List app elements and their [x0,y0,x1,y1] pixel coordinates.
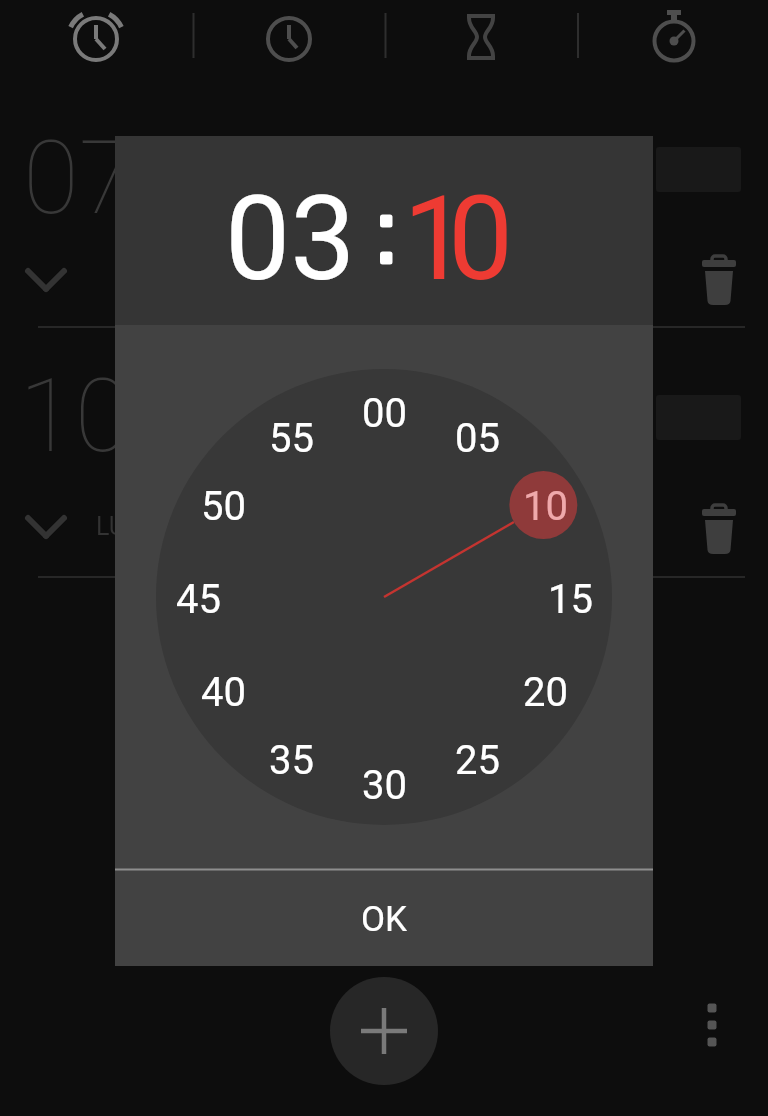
staticText: 20 [523,669,568,716]
staticText: LU [96,512,126,541]
staticText: 50 [201,483,246,530]
staticText: 1 [403,171,469,307]
button[interactable] [576,0,768,66]
staticText: 10 [523,483,568,530]
staticText: 0 [448,171,514,307]
staticText: 55 [269,415,314,462]
staticText: 25 [455,737,500,784]
staticText: 30 [362,762,407,809]
button[interactable] [384,0,576,66]
staticText: 07 [23,118,135,238]
button[interactable] [192,0,384,66]
staticText: 00 [362,390,407,437]
staticText: 45 [176,576,221,623]
button[interactable]: OK [115,873,653,966]
staticText: 15 [548,576,593,623]
staticText: 05 [455,415,500,462]
staticText: 40 [201,669,246,716]
button[interactable] [330,977,438,1085]
button[interactable] [694,995,730,1055]
staticText: 03 [225,171,356,307]
staticText: OK [361,899,408,940]
staticText: 35 [269,737,314,784]
button[interactable] [0,0,192,66]
staticText: 10 [19,356,131,476]
